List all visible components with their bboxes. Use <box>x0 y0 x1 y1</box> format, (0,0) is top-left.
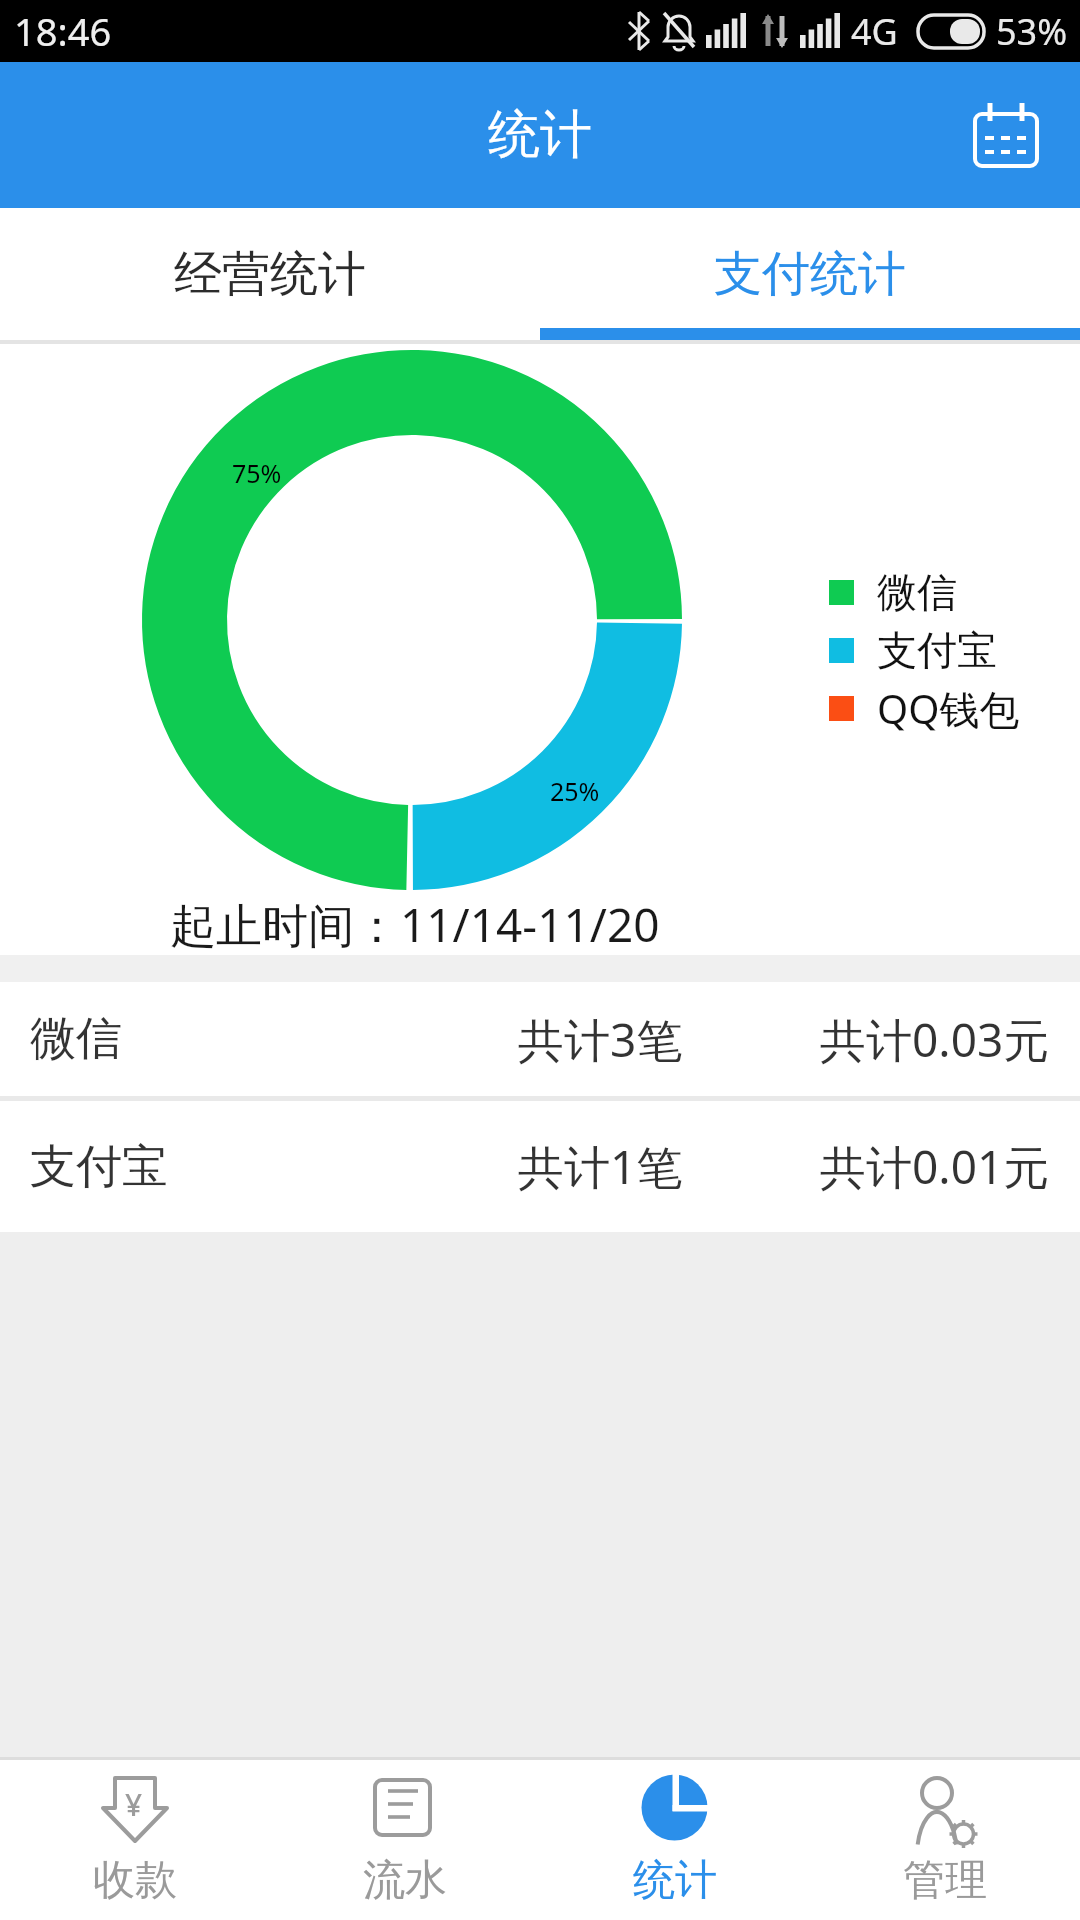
staticText: 共计0.03元 <box>820 1008 1050 1071</box>
staticText: 收款 <box>93 1854 177 1907</box>
button[interactable]: 支付宝 <box>0 1101 1080 1232</box>
staticText: 起止时间：11/14-11/20 <box>170 893 660 956</box>
staticText: 25% <box>550 774 600 808</box>
button[interactable]: 统计 <box>540 1760 810 1920</box>
button[interactable]: ¥ <box>0 1760 270 1920</box>
staticText: 4G <box>851 7 898 56</box>
staticText: 18:46 <box>14 5 112 57</box>
button[interactable] <box>974 101 1042 169</box>
button[interactable]: 管理 <box>810 1760 1080 1920</box>
button[interactable]: 流水 <box>270 1760 540 1920</box>
staticText: 共计1笔 <box>518 1135 683 1198</box>
staticText: 统计 <box>633 1854 717 1907</box>
staticText: 共计3笔 <box>518 1008 683 1071</box>
staticText: 经营统计 <box>174 244 366 304</box>
staticText: 管理 <box>903 1854 987 1907</box>
staticText: 53% <box>996 7 1068 56</box>
staticText: 75% <box>232 456 282 490</box>
staticText: 微信 <box>877 567 957 617</box>
button[interactable]: 微信 <box>0 982 1080 1096</box>
staticText: QQ钱包 <box>877 681 1020 736</box>
staticText: 统计 <box>488 102 592 168</box>
button[interactable]: 经营统计 <box>0 208 540 340</box>
staticText: 微信 <box>30 1010 122 1068</box>
staticText: 流水 <box>363 1854 447 1907</box>
staticText: 支付宝 <box>877 625 997 675</box>
button[interactable]: 支付统计 <box>540 208 1080 340</box>
staticText: 支付宝 <box>30 1138 168 1196</box>
staticText: 共计0.01元 <box>820 1135 1050 1198</box>
staticText: 支付统计 <box>714 244 906 304</box>
staticText: ¥ <box>125 1784 143 1825</box>
